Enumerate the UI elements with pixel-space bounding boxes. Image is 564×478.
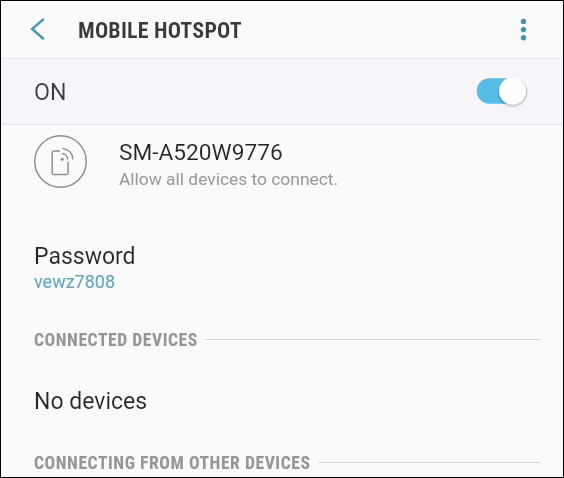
- staticText: Password: [34, 243, 136, 270]
- button[interactable]: ON: [1, 59, 563, 124]
- staticText: MOBILE HOTSPOT: [78, 18, 242, 44]
- staticText: CONNECTED DEVICES: [34, 330, 198, 350]
- button[interactable]: Password: [1, 239, 563, 301]
- button[interactable]: Mobile hotspot on: [473, 71, 531, 111]
- button[interactable]: No devices: [1, 361, 563, 429]
- staticText: No devices: [34, 388, 148, 415]
- staticText: CONNECTING FROM OTHER DEVICES: [34, 453, 311, 473]
- staticText: ON: [34, 78, 67, 105]
- staticText: SM-A520W9776: [119, 139, 283, 166]
- button[interactable]: SM-A520W9776: [1, 124, 563, 200]
- staticText: Allow all devices to connect.: [119, 169, 339, 189]
- staticText: vewz7808: [34, 271, 116, 292]
- button[interactable]: Navigate up: [21, 12, 55, 46]
- button[interactable]: More options: [506, 12, 540, 46]
